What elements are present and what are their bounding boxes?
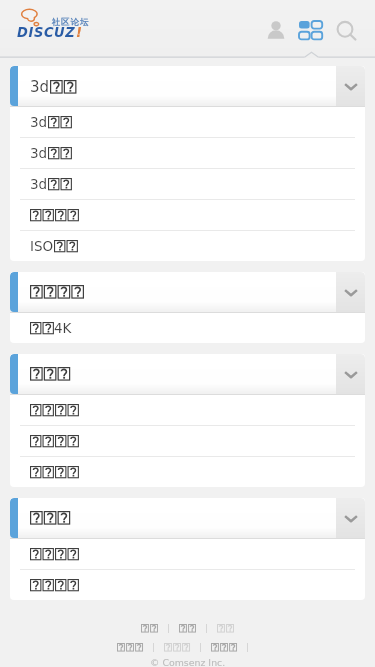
button[interactable]	[10, 426, 365, 456]
button[interactable]: 3d	[10, 169, 365, 199]
button[interactable]	[211, 643, 237, 652]
button[interactable]: Expand	[336, 498, 365, 538]
staticText: 3d	[30, 145, 48, 161]
button[interactable]: 3d	[10, 107, 365, 137]
button[interactable]: Account	[267, 21, 285, 40]
button[interactable]	[10, 570, 365, 600]
button[interactable]	[10, 539, 365, 569]
button[interactable]: Search	[336, 21, 357, 42]
button[interactable]	[10, 457, 365, 487]
staticText: !	[76, 24, 82, 41]
button[interactable]	[10, 395, 365, 425]
button[interactable]	[10, 272, 365, 312]
button[interactable]: 3d	[10, 138, 365, 168]
staticText: 3d	[30, 114, 48, 130]
staticText: 4K	[54, 320, 72, 336]
staticText: DISCUZ	[17, 24, 76, 41]
button[interactable]	[10, 498, 365, 538]
button[interactable]	[10, 200, 365, 230]
button[interactable]	[179, 624, 196, 633]
button[interactable]: 3d	[10, 66, 365, 106]
button[interactable]: Categories	[299, 21, 322, 40]
button[interactable]: Expand	[336, 272, 365, 312]
staticText: 3d	[30, 78, 50, 95]
button[interactable]	[10, 354, 365, 394]
button[interactable]	[217, 624, 234, 633]
button[interactable]: 4K	[10, 313, 365, 343]
button[interactable]	[164, 643, 190, 652]
staticText: © Comsenz Inc.	[150, 657, 226, 667]
staticText: 3d	[30, 176, 48, 192]
staticText: ISO	[30, 238, 54, 254]
button[interactable]: ISO	[10, 231, 365, 261]
button[interactable]: Expand	[336, 354, 365, 394]
staticText: 社区论坛	[51, 17, 89, 28]
button[interactable]: Expand	[336, 66, 365, 106]
button[interactable]	[117, 643, 143, 652]
button[interactable]	[141, 624, 158, 633]
